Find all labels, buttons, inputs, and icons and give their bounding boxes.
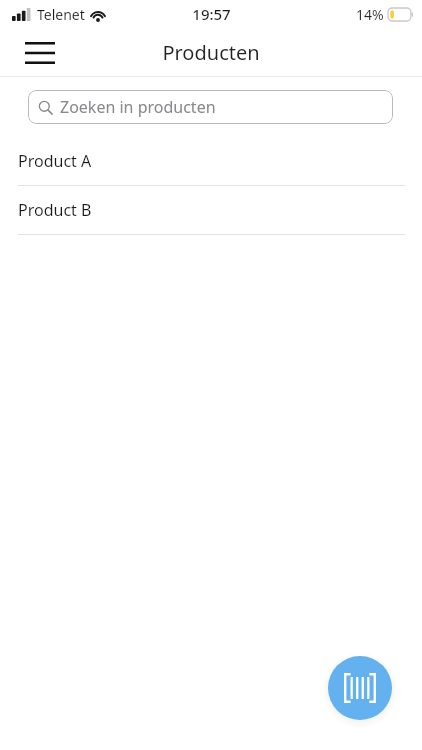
button[interactable]: Zoeken in producten	[28, 90, 393, 124]
staticText: Product A	[18, 150, 92, 172]
staticText: Telenet	[37, 5, 85, 24]
button[interactable]: Scan barcode	[326, 654, 394, 722]
staticText: 19:57	[192, 4, 231, 24]
staticText: Producten	[162, 39, 260, 66]
staticText: 14%	[356, 5, 384, 24]
button[interactable]: Product B	[0, 186, 422, 235]
staticText: Product B	[18, 199, 92, 221]
staticText: Zoeken in producten	[60, 96, 216, 118]
button[interactable]: Product A	[0, 137, 422, 186]
button[interactable]: Menu	[18, 31, 62, 75]
